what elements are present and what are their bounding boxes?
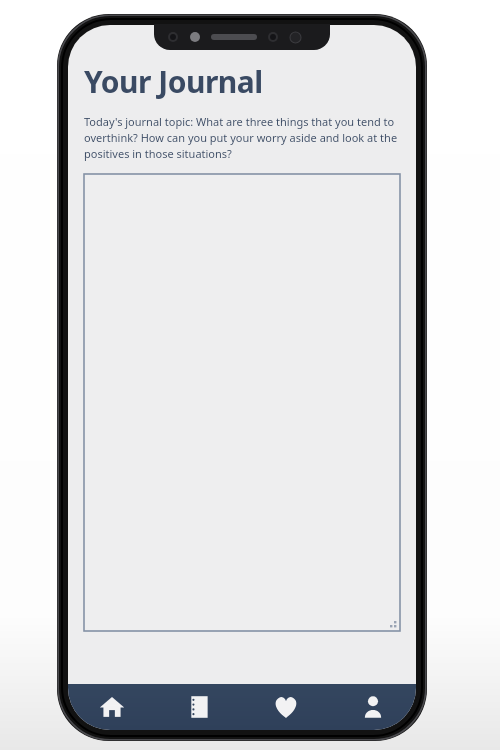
button[interactable]: Home xyxy=(68,684,155,730)
button[interactable]: Journal xyxy=(155,684,242,730)
button[interactable]: Profile xyxy=(329,684,416,730)
button[interactable]: Favorites xyxy=(242,684,329,730)
button[interactable] xyxy=(84,174,400,631)
staticText: Today's journal topic: What are three th… xyxy=(84,113,404,161)
staticText: Your Journal xyxy=(84,61,263,102)
